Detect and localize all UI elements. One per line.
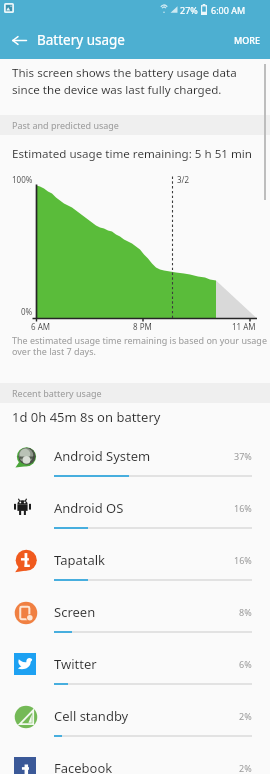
- button[interactable]: Screen: [0, 593, 270, 645]
- staticText: 16%: [234, 502, 252, 514]
- staticText: Recent battery usage: [12, 387, 102, 399]
- staticText: 11 AM: [232, 321, 256, 332]
- staticText: 6 AM: [31, 321, 51, 332]
- staticText: Screen: [54, 603, 96, 621]
- staticText: Past and predicted usage: [12, 119, 119, 131]
- staticText: 100%: [12, 174, 33, 185]
- staticText: 16%: [234, 554, 252, 566]
- staticText: 6%: [239, 658, 252, 670]
- staticText: Android OS: [54, 499, 124, 517]
- button[interactable]: MORE: [225, 24, 270, 56]
- button[interactable]: Back: [0, 21, 38, 59]
- staticText: Tapatalk: [54, 551, 106, 569]
- staticText: 1d 0h 45m 8s on battery: [12, 408, 161, 426]
- button[interactable]: Cell standby: [0, 697, 270, 749]
- staticText: MORE: [234, 34, 261, 46]
- staticText: Estimated usage time remaining: 5 h 51 m…: [12, 146, 252, 162]
- staticText: 3/2: [177, 174, 190, 185]
- staticText: This screen shows the battery usage data…: [12, 65, 237, 97]
- staticText: 6:00 AM: [211, 4, 246, 16]
- staticText: 2%: [239, 710, 252, 722]
- staticText: Facebook: [54, 759, 113, 774]
- button[interactable]: Twitter: [0, 645, 270, 697]
- button[interactable]: Android System: [0, 437, 270, 489]
- staticText: 2%: [239, 762, 252, 774]
- staticText: Battery usage: [37, 31, 125, 49]
- staticText: 27%: [180, 4, 198, 16]
- button[interactable]: Tapatalk: [0, 541, 270, 593]
- staticText: Twitter: [54, 655, 97, 673]
- staticText: 37%: [234, 450, 252, 462]
- staticText: Cell standby: [54, 707, 129, 725]
- staticText: Android System: [54, 447, 151, 465]
- staticText: The estimated usage time remaining is ba…: [12, 334, 267, 358]
- button[interactable]: Android OS: [0, 489, 270, 541]
- staticText: 8 PM: [133, 321, 152, 332]
- button[interactable]: Facebook: [0, 749, 270, 774]
- staticText: 0%: [21, 306, 33, 317]
- staticText: 8%: [239, 606, 252, 618]
